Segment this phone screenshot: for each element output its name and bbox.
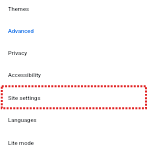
staticText: Lite mode — [8, 140, 34, 147]
staticText: Themes — [8, 6, 29, 13]
staticText: Accessibility — [8, 72, 41, 79]
button[interactable]: Languages — [0, 109, 150, 131]
button[interactable]: Lite mode — [0, 132, 150, 150]
staticText: Site settings — [8, 95, 41, 102]
button[interactable]: Privacy — [0, 42, 150, 64]
button[interactable]: Themes — [0, 0, 150, 20]
button[interactable]: Accessibility — [0, 64, 150, 86]
staticText: Languages — [8, 117, 37, 124]
button[interactable]: Site settings — [0, 87, 150, 109]
staticText: Advanced — [8, 28, 34, 35]
staticText: Privacy — [8, 50, 28, 57]
button[interactable]: Advanced — [0, 20, 150, 42]
